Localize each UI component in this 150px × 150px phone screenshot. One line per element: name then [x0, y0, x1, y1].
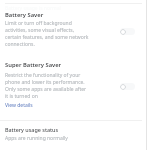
staticText: Restrict the functionality of your phone… — [5, 72, 89, 100]
button[interactable]: Turn on Super Battery Saver — [120, 83, 135, 90]
button[interactable]: Turn on Battery Saver — [120, 28, 135, 35]
button[interactable]: View details — [5, 102, 33, 109]
staticText: Battery usage status — [5, 126, 59, 133]
staticText: Super Battery Saver — [5, 61, 62, 69]
button[interactable]: Battery usage status — [0, 126, 150, 142]
staticText: Limit or turn off background activities,… — [5, 20, 91, 48]
staticText: Apps are running normally — [5, 135, 68, 142]
button[interactable]: Super Battery Saver — [0, 61, 150, 109]
button[interactable]: Battery Saver — [0, 11, 150, 48]
staticText: Battery Saver — [5, 11, 44, 19]
